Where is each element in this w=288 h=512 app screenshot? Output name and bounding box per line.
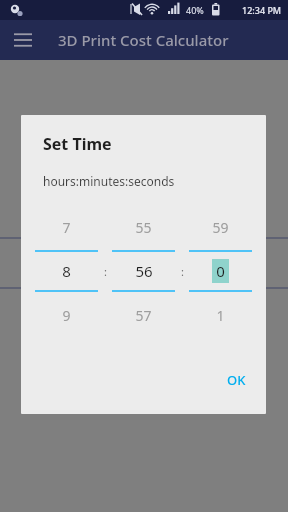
staticText: 0	[216, 261, 225, 281]
staticText: 59	[212, 218, 229, 237]
staticText: 1	[216, 306, 225, 325]
button[interactable]: OK	[217, 366, 256, 394]
button[interactable]: 59	[189, 212, 252, 330]
staticText: 40%	[186, 4, 204, 16]
staticText: Set Time	[43, 133, 112, 155]
staticText: 57	[135, 306, 152, 325]
button[interactable]: 55	[112, 212, 175, 330]
staticText: 9	[62, 306, 71, 325]
staticText: 7	[62, 218, 71, 237]
staticText: :	[181, 264, 184, 279]
staticText: 8	[62, 261, 71, 281]
staticText: 55	[135, 218, 152, 237]
button[interactable]: Open navigation menu	[6, 23, 40, 57]
button[interactable]: 7	[35, 212, 98, 330]
staticText: 56	[135, 261, 153, 281]
staticText: hours:minutes:seconds	[43, 173, 175, 189]
staticText: 3D Print Cost Calculator	[58, 30, 229, 50]
staticText: 12:34 PM	[242, 4, 282, 16]
staticText: OK	[227, 371, 246, 389]
staticText: :	[104, 264, 107, 279]
